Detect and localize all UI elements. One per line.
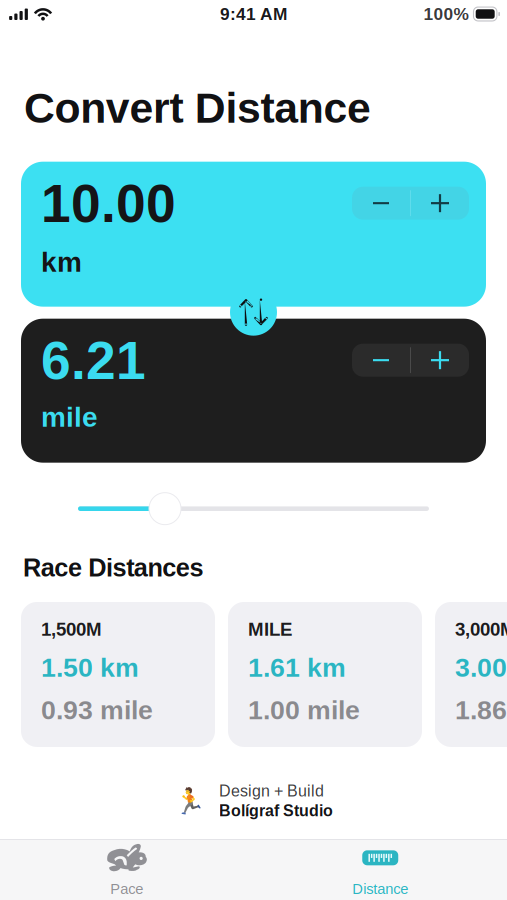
- staticText: 9:41 AM: [220, 4, 287, 24]
- staticText: Design + Build: [219, 782, 324, 800]
- button[interactable]: Distance: [253, 835, 507, 900]
- button[interactable]: Increase: [411, 344, 469, 377]
- staticText: 1.86 mile: [455, 695, 507, 725]
- button[interactable]: MILE: [228, 602, 422, 747]
- staticText: MILE: [248, 619, 292, 640]
- staticText: 1.00 mile: [248, 695, 360, 725]
- button[interactable]: 3,000M: [435, 602, 507, 747]
- staticText: 0.93 mile: [41, 695, 153, 725]
- button[interactable]: Swap units: [226, 289, 280, 336]
- staticText: 3.00 km: [455, 653, 507, 682]
- staticText: 100%: [423, 4, 468, 24]
- button[interactable]: Increase: [411, 187, 469, 220]
- staticText: Race Distances: [23, 554, 203, 582]
- staticText: 3,000M: [455, 619, 507, 640]
- staticText: 1.50 km: [41, 653, 139, 682]
- staticText: 1,500M: [41, 619, 102, 640]
- staticText: km: [41, 246, 82, 278]
- staticText: 6.21: [41, 331, 146, 390]
- button[interactable]: 1,500M: [21, 602, 215, 747]
- staticText: Convert Distance: [24, 84, 371, 132]
- button[interactable]: Decrease: [352, 187, 410, 220]
- staticText: Pace: [110, 881, 143, 897]
- button[interactable]: Decrease: [352, 344, 410, 377]
- staticText: mile: [41, 401, 98, 433]
- staticText: 🏃: [174, 786, 206, 816]
- staticText: 1.61 km: [248, 653, 346, 682]
- staticText: 10.00: [41, 174, 176, 233]
- staticText: Bolígraf Studio: [219, 802, 333, 820]
- button[interactable]: Pace: [0, 835, 253, 900]
- staticText: Distance: [352, 881, 408, 897]
